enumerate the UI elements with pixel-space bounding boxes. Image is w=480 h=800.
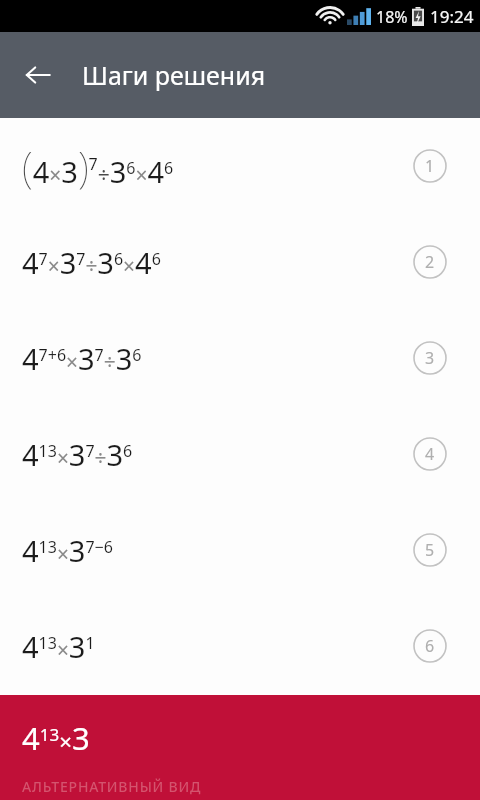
staticText: 413×3	[22, 717, 90, 759]
staticText: 19:24	[430, 5, 474, 28]
button[interactable]: 47+6×37÷36	[0, 310, 480, 406]
button[interactable]: Назад	[14, 51, 62, 99]
staticText: 413×37−6	[22, 531, 113, 570]
staticText: 1	[425, 155, 435, 177]
staticText: 413×31	[22, 627, 95, 666]
button[interactable]: 413×31	[0, 598, 480, 694]
staticText: 2	[425, 251, 435, 273]
staticText: 3	[425, 347, 435, 369]
button[interactable]: 413×37−6	[0, 502, 480, 598]
staticText: (4×3)7÷36×46	[22, 138, 174, 195]
staticText: 413×37÷36	[22, 435, 133, 474]
staticText: 5	[425, 539, 435, 561]
staticText: 47×37÷36×46	[22, 243, 161, 282]
button[interactable]: 413×3	[0, 695, 480, 800]
button[interactable]: (4×3)7÷36×46	[0, 118, 480, 214]
staticText: 47+6×37÷36	[22, 339, 142, 378]
button[interactable]: 47×37÷36×46	[0, 214, 480, 310]
staticText: 4	[425, 443, 435, 465]
staticText: Шаги решения	[82, 58, 266, 92]
button[interactable]: 413×37÷36	[0, 406, 480, 502]
staticText: АЛЬТЕРНАТИВНЫЙ ВИД	[22, 777, 202, 796]
staticText: 18%	[376, 6, 408, 28]
staticText: 6	[425, 635, 435, 657]
